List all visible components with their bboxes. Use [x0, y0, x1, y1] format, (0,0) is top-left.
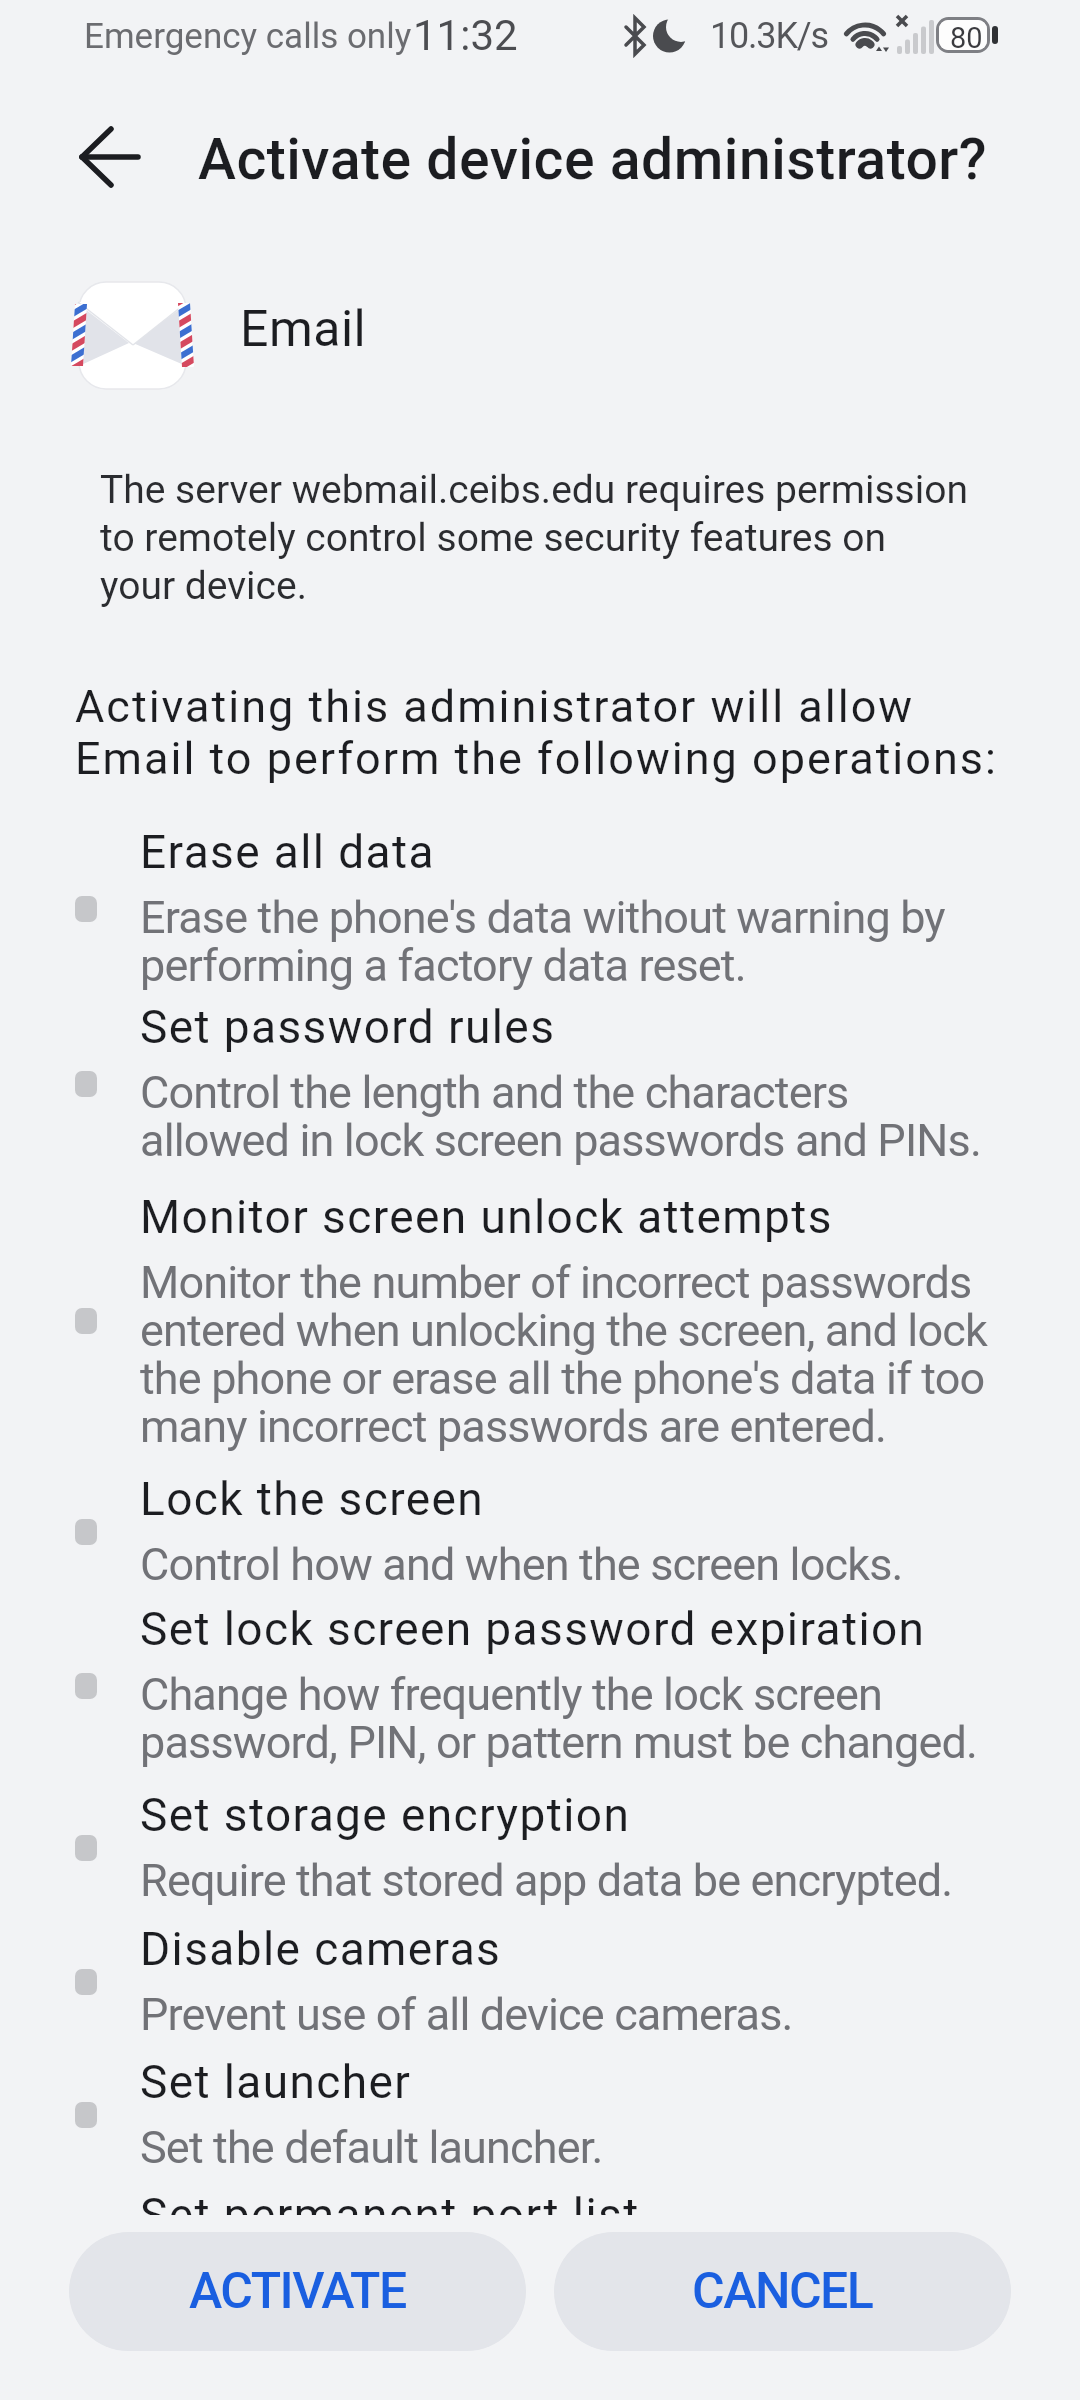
- staticText: Change how frequently the lock screen pa…: [140, 1668, 978, 1769]
- staticText: Set password rules: [140, 1000, 556, 1054]
- staticText: Activating this administrator will allow…: [75, 680, 998, 785]
- staticText: Control the length and the characters al…: [140, 1066, 981, 1167]
- staticText: Control how and when the screen locks.: [140, 1538, 903, 1591]
- staticText: Emergency calls only: [84, 16, 412, 57]
- staticText: Require that stored app data be encrypte…: [140, 1854, 953, 1907]
- staticText: Erase all data: [140, 825, 435, 879]
- button[interactable]: CANCEL: [554, 2232, 1011, 2351]
- staticText: ACTIVATE: [189, 2262, 406, 2321]
- staticText: Set the default launcher.: [140, 2121, 603, 2174]
- staticText: Email: [240, 300, 367, 359]
- staticText: 11:32: [413, 11, 518, 60]
- staticText: Activate device administrator?: [198, 126, 988, 193]
- staticText: Monitor screen unlock attempts: [140, 1190, 833, 1244]
- staticText: Disable cameras: [140, 1922, 502, 1976]
- button[interactable]: [70, 120, 150, 196]
- staticText: Set storage encryption: [140, 1788, 631, 1842]
- staticText: Set launcher: [140, 2055, 412, 2109]
- staticText: Prevent use of all device cameras.: [140, 1988, 793, 2041]
- staticText: Monitor the number of incorrect password…: [140, 1256, 987, 1453]
- staticText: 80: [950, 21, 983, 55]
- staticText: Set permanent port list: [140, 2188, 640, 2215]
- staticText: 10.3K/s: [710, 15, 828, 57]
- staticText: Lock the screen: [140, 1472, 485, 1526]
- button[interactable]: ACTIVATE: [69, 2232, 526, 2351]
- staticText: Erase the phone's data without warning b…: [140, 891, 945, 992]
- staticText: CANCEL: [692, 2262, 873, 2321]
- staticText: Set lock screen password expiration: [140, 1602, 926, 1656]
- staticText: The server webmail.ceibs.edu requires pe…: [100, 467, 968, 608]
